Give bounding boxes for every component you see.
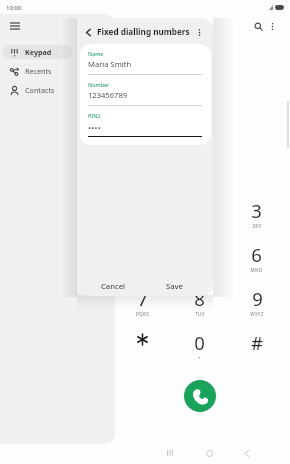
button[interactable]: # — [228, 330, 285, 374]
staticText: Contacts — [25, 85, 55, 95]
staticText: Maria Smith — [88, 59, 132, 69]
button[interactable]: 0 — [171, 330, 228, 374]
staticText: 3 — [251, 198, 262, 223]
staticText: Number — [88, 81, 110, 88]
button[interactable]: 8 — [171, 286, 228, 330]
button[interactable]: 3 — [228, 198, 285, 242]
button[interactable]: Call — [184, 380, 216, 412]
staticText: Recents — [25, 66, 52, 76]
button[interactable]: More options — [189, 21, 210, 43]
staticText: 6 — [251, 242, 262, 267]
staticText: •••• — [88, 123, 102, 133]
button[interactable]: 7 — [114, 286, 171, 330]
staticText: PIN2 — [88, 112, 101, 119]
button[interactable]: 9 — [228, 286, 285, 330]
staticText: Fixed dialling numbers — [97, 26, 190, 37]
staticText: # — [251, 330, 263, 355]
staticText: MNO — [250, 267, 263, 273]
staticText: TUV — [195, 311, 205, 317]
staticText: 0 — [194, 330, 205, 355]
staticText: DEF — [252, 223, 262, 229]
button[interactable]: Contacts — [3, 83, 72, 97]
button[interactable]: 4 — [114, 242, 171, 286]
button[interactable]: Back — [228, 442, 264, 464]
button[interactable]: Recents — [152, 442, 188, 464]
staticText: Cancel — [101, 281, 126, 291]
staticText: PQRS — [136, 311, 149, 317]
staticText: Name — [88, 50, 104, 57]
button[interactable]: Home — [191, 442, 227, 464]
staticText: WXYZ — [250, 311, 264, 317]
button[interactable]: More options — [264, 18, 281, 35]
button[interactable]: Recents — [3, 64, 72, 78]
button[interactable]: 5 — [171, 242, 228, 286]
button[interactable]: Save — [159, 277, 189, 294]
button[interactable]: Keypad — [3, 45, 72, 59]
staticText: 7 — [137, 286, 148, 311]
staticText: 8 — [194, 286, 205, 311]
button[interactable]: 6 — [228, 242, 285, 286]
button[interactable]: Cancel — [94, 277, 132, 294]
button[interactable] — [114, 330, 171, 374]
staticText: 123456789 — [88, 90, 128, 100]
staticText: + — [198, 355, 201, 361]
button[interactable]: Back — [77, 21, 99, 43]
staticText: Save — [166, 281, 183, 291]
staticText: 10:00 — [6, 4, 22, 12]
button[interactable]: Search — [250, 18, 267, 35]
staticText: Keypad — [25, 47, 52, 57]
staticText: 9 — [252, 286, 263, 311]
button[interactable]: Menu — [6, 17, 23, 34]
